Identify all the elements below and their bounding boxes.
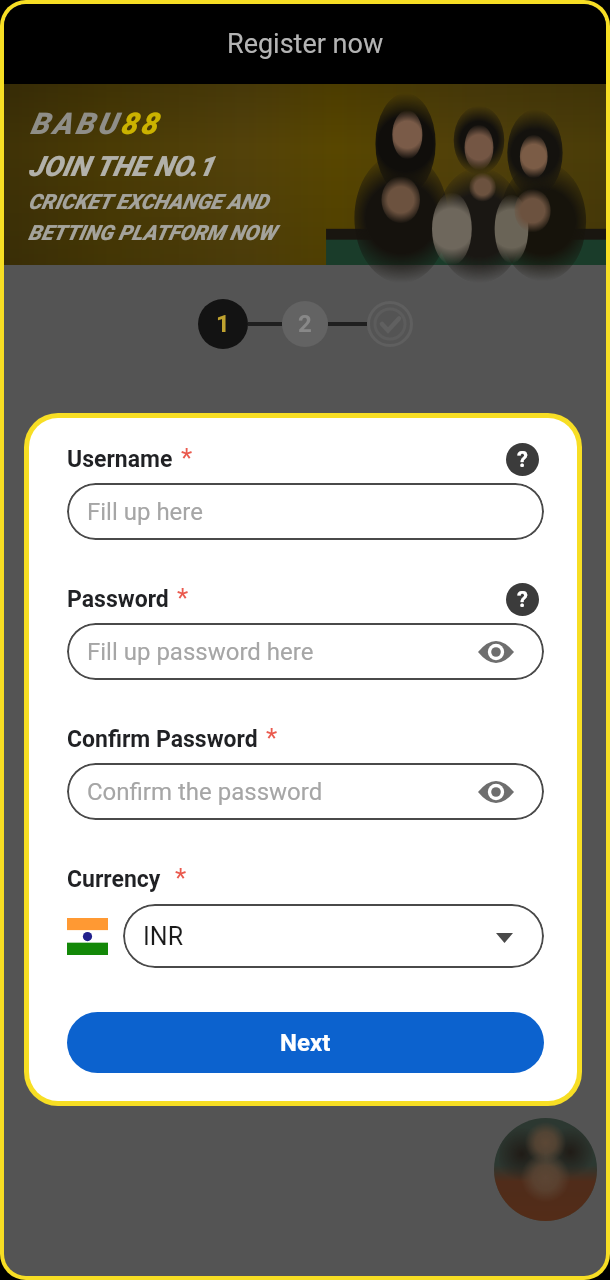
button[interactable]: Fill up password here bbox=[67, 623, 544, 680]
staticText: Register now bbox=[227, 28, 384, 60]
staticText: Confirm the password bbox=[87, 778, 323, 806]
button[interactable]: INR bbox=[123, 904, 544, 968]
staticText: 1 bbox=[216, 310, 230, 338]
staticText: BABU bbox=[30, 106, 120, 141]
staticText: JOIN THE NO.1 bbox=[28, 150, 214, 183]
staticText: 2 bbox=[298, 310, 312, 338]
staticText: Confirm Password bbox=[67, 726, 258, 753]
staticText: CRICKET EXCHANGE AND bbox=[28, 190, 269, 215]
button[interactable]: Confirm the password bbox=[67, 763, 544, 820]
staticText: * bbox=[177, 583, 189, 613]
staticText: ? bbox=[517, 587, 528, 613]
staticText: Currency bbox=[67, 866, 161, 893]
button[interactable]: 1 bbox=[198, 299, 248, 349]
button[interactable]: Help bbox=[506, 583, 539, 616]
staticText: INR bbox=[143, 922, 184, 951]
staticText: Fill up here bbox=[87, 498, 203, 526]
staticText: 88 bbox=[120, 106, 161, 141]
staticText: BETTING PLATFORM NOW bbox=[28, 221, 276, 246]
button[interactable]: Step 3 bbox=[367, 301, 413, 347]
button[interactable]: 2 bbox=[282, 301, 328, 347]
staticText: Fill up password here bbox=[87, 638, 314, 666]
staticText: ? bbox=[517, 447, 528, 473]
other: Show password bbox=[478, 780, 514, 804]
button[interactable]: Help bbox=[506, 443, 539, 476]
staticText: Next bbox=[280, 1029, 331, 1057]
staticText: * bbox=[181, 443, 193, 473]
button[interactable]: Next bbox=[67, 1012, 544, 1073]
button[interactable]: Fill up here bbox=[67, 483, 544, 540]
staticText: Username bbox=[67, 446, 173, 473]
staticText: * bbox=[266, 723, 278, 753]
other: Show password bbox=[478, 640, 514, 664]
staticText: * bbox=[175, 863, 187, 893]
button[interactable]: Support chat bbox=[494, 1118, 597, 1221]
staticText: Password bbox=[67, 586, 169, 613]
